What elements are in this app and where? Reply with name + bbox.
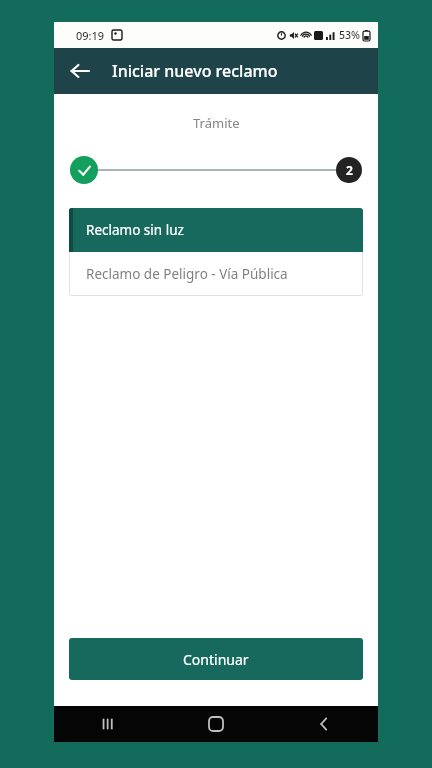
button[interactable]: Back — [62, 53, 98, 89]
button[interactable]: Home — [162, 706, 270, 742]
staticText: 53% — [339, 28, 360, 42]
staticText: Iniciar nuevo reclamo — [112, 60, 278, 82]
button[interactable]: Paso 1 completado — [70, 156, 98, 184]
staticText: 09:19 — [76, 28, 105, 43]
button[interactable]: Reclamo sin luz — [69, 208, 363, 252]
staticText: Reclamo sin luz — [86, 221, 184, 239]
button[interactable]: Recents — [54, 706, 162, 742]
button[interactable]: 2 — [336, 157, 362, 183]
button[interactable]: Back — [270, 706, 378, 742]
button[interactable]: Reclamo de Peligro - Vía Pública — [69, 252, 363, 296]
staticText: Trámite — [193, 114, 240, 132]
button[interactable]: Continuar — [69, 638, 363, 680]
staticText: Continuar — [183, 650, 249, 669]
staticText: 2 — [346, 162, 353, 178]
staticText: Reclamo de Peligro - Vía Pública — [86, 265, 288, 283]
